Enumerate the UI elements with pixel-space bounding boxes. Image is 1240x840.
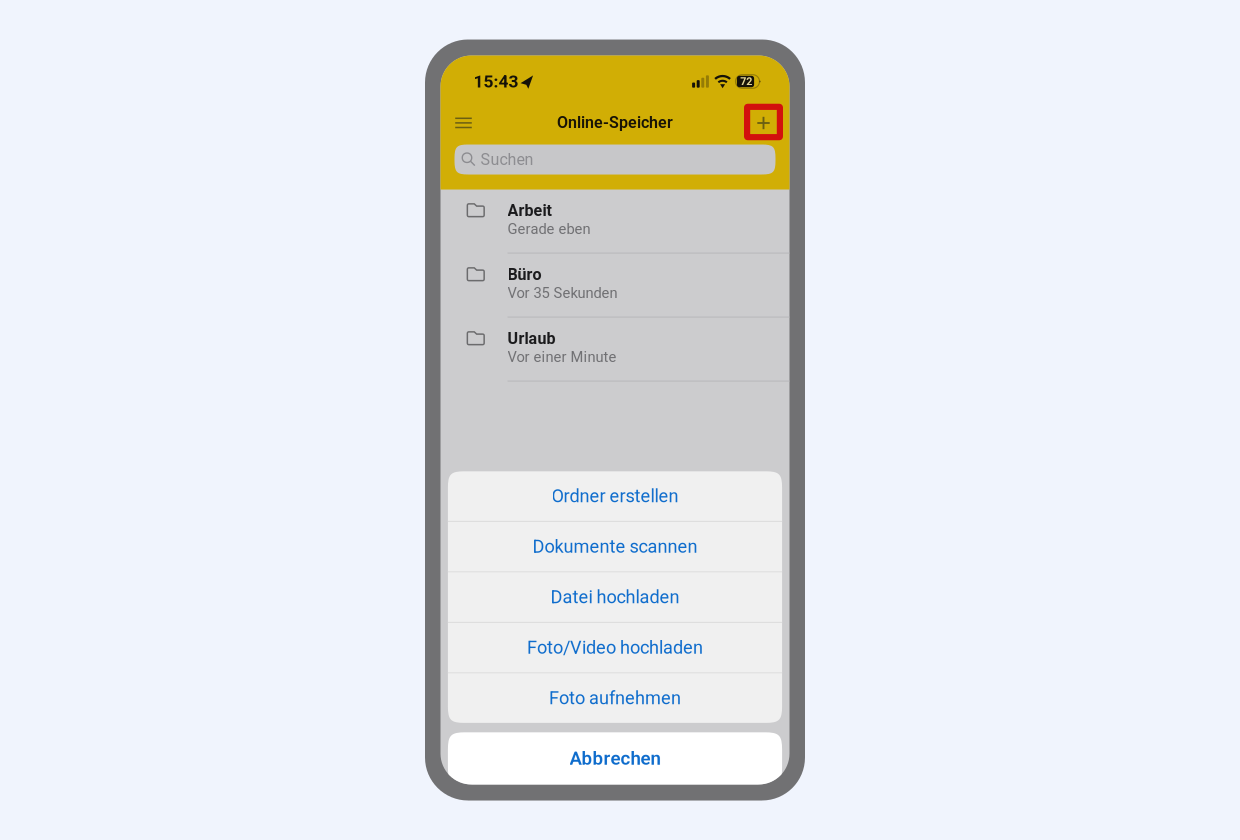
button[interactable]: Büro [440,253,789,317]
staticText: Abbrechen [569,747,660,769]
button[interactable]: Arbeit [440,189,789,253]
staticText: Dokumente scannen [532,536,697,557]
button[interactable]: Datei hochladen [448,572,782,622]
button[interactable]: Ordner erstellen [448,471,782,521]
button[interactable]: Hinzufügen [744,102,783,139]
button[interactable]: Abbrechen [448,732,782,784]
staticText: Urlaub [507,329,555,348]
staticText: Vor 35 Sekunden [507,284,617,302]
staticText: Vor einer Minute [507,348,616,366]
staticText: Online-Speicher [557,113,673,132]
staticText: 15:43 [473,71,518,92]
staticText: Foto/Video hochladen [527,637,703,658]
staticText: Ordner erstellen [551,485,678,507]
button[interactable]: Foto/Video hochladen [448,623,782,672]
staticText: Arbeit [507,201,551,220]
staticText: Datei hochladen [550,586,679,608]
staticText: Gerade eben [507,220,590,238]
staticText: 72 [740,75,752,88]
button[interactable]: Dokumente scannen [448,522,782,571]
button[interactable]: Urlaub [440,317,789,381]
button[interactable]: Foto aufnehmen [448,673,782,723]
button[interactable]: Menü [442,100,484,140]
staticText: Foto aufnehmen [549,687,681,709]
staticText: Suchen [480,150,533,169]
staticText: Büro [507,265,541,284]
button[interactable]: Suchen [454,144,775,174]
